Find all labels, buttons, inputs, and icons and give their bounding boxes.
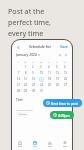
button[interactable]: 4:00pm xyxy=(50,111,74,119)
button[interactable]: Analytics xyxy=(42,138,57,150)
staticText: 29 xyxy=(24,89,27,93)
staticText: 26 xyxy=(56,83,59,87)
button[interactable]: 9 xyxy=(29,70,37,76)
staticText: M xyxy=(22,60,29,63)
button[interactable]: 16 xyxy=(29,76,37,82)
staticText: Best time to post xyxy=(51,101,78,105)
button[interactable]: 1 xyxy=(22,64,29,70)
button[interactable]: Back xyxy=(15,44,21,50)
staticText: W xyxy=(37,60,45,63)
staticText: 5 xyxy=(56,65,58,69)
staticText: S xyxy=(61,60,69,63)
button[interactable]: 26 xyxy=(53,82,61,88)
button[interactable]: 6 xyxy=(61,64,69,70)
button[interactable]: Best time to post xyxy=(43,99,82,107)
button[interactable]: 24 xyxy=(37,82,45,88)
button[interactable]: Previous month xyxy=(58,53,62,57)
staticText: Time xyxy=(16,98,24,102)
staticText: T xyxy=(45,60,53,63)
button[interactable]: 7 xyxy=(15,70,22,76)
staticText: 18 xyxy=(48,77,51,81)
staticText: 3 xyxy=(40,65,42,69)
button[interactable]: January 2024 xyxy=(16,52,40,57)
button[interactable]: 25 xyxy=(45,82,53,88)
staticText: 25 xyxy=(48,83,51,87)
button[interactable]: 13 xyxy=(61,70,69,76)
staticText: S xyxy=(15,60,22,63)
staticText: 19 xyxy=(56,77,59,81)
button[interactable]: 09:15a xyxy=(16,112,29,117)
staticText: 30 xyxy=(32,89,35,93)
staticText: 4:00pm xyxy=(58,113,70,117)
button[interactable]: Calendar xyxy=(27,138,42,150)
button[interactable]: 18 xyxy=(45,76,53,82)
button[interactable]: 21 xyxy=(15,82,22,88)
button[interactable]: 31 xyxy=(37,88,45,94)
button[interactable]: Profile xyxy=(57,138,72,150)
staticText: Historical Time xyxy=(16,108,33,111)
staticText: 14 xyxy=(17,77,20,81)
button[interactable]: 29 xyxy=(22,88,29,94)
button[interactable]: 22 xyxy=(22,82,29,88)
button[interactable]: 17 xyxy=(37,76,45,82)
button[interactable]: Home xyxy=(12,138,27,150)
staticText: 13 xyxy=(64,71,67,75)
button[interactable]: Save xyxy=(59,44,69,49)
staticText: Post at the xyxy=(8,6,45,16)
staticText: 8 xyxy=(25,71,27,75)
staticText: 24 xyxy=(40,83,43,87)
staticText: 21 xyxy=(17,83,20,87)
staticText: 7 xyxy=(18,71,20,75)
staticText: 12 xyxy=(56,71,59,75)
staticText: 16 xyxy=(32,77,35,81)
button[interactable]: 4 xyxy=(45,64,53,70)
staticText: 9 xyxy=(32,71,34,75)
button[interactable]: 30 xyxy=(29,88,37,94)
staticText: 22 xyxy=(24,83,27,87)
staticText: 17 xyxy=(40,78,43,82)
staticText: 11 xyxy=(48,71,51,75)
staticText: 6 xyxy=(64,65,66,69)
button[interactable]: 10 xyxy=(37,70,45,76)
staticText: 10 xyxy=(40,71,43,75)
staticText: January 2024 xyxy=(16,52,37,57)
staticText: Schedule for xyxy=(21,44,59,49)
button[interactable]: 3 xyxy=(37,64,45,70)
button[interactable]: 28 xyxy=(15,88,22,94)
button[interactable]: 19 xyxy=(53,76,61,82)
staticText: 28 xyxy=(17,89,20,93)
staticText: 20 xyxy=(64,77,67,81)
button[interactable]: 11 xyxy=(45,70,53,76)
button[interactable]: Next month xyxy=(64,53,68,57)
staticText: 4 xyxy=(48,65,50,69)
button[interactable]: 2 xyxy=(29,64,37,70)
button[interactable]: 23 xyxy=(29,82,37,88)
staticText: 09:15a xyxy=(19,113,27,116)
staticText: 2 xyxy=(32,65,34,69)
staticText: F xyxy=(53,60,61,63)
staticText: 27 xyxy=(64,83,67,87)
button[interactable]: 8 xyxy=(22,70,29,76)
staticText: 1 xyxy=(25,65,27,69)
staticText: 15 xyxy=(24,77,27,81)
button[interactable]: 27 xyxy=(61,82,69,88)
staticText: perfect time, xyxy=(8,17,52,27)
staticText: 31 xyxy=(40,89,43,93)
button[interactable]: 15 xyxy=(22,76,29,82)
staticText: 23 xyxy=(32,83,35,87)
button[interactable]: 12 xyxy=(53,70,61,76)
button[interactable]: 20 xyxy=(61,76,69,82)
button[interactable]: 14 xyxy=(15,76,22,82)
staticText: every time xyxy=(8,28,44,38)
button[interactable]: 5 xyxy=(53,64,61,70)
staticText: T xyxy=(29,60,37,63)
staticText: Save xyxy=(60,44,68,49)
